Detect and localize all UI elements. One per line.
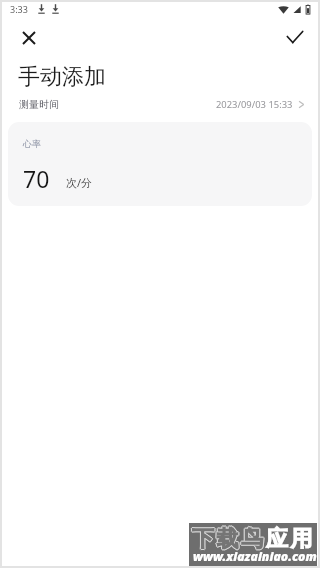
button[interactable]: 测量时间	[2, 91, 318, 117]
staticText: 手动添加	[18, 63, 106, 91]
staticText: 2023/09/03 15:33	[216, 98, 293, 111]
staticText: 测量时间	[19, 98, 59, 111]
button[interactable]: Confirm	[277, 18, 313, 54]
staticText: 下载鸟	[191, 525, 265, 553]
staticText: 次/分	[66, 175, 93, 190]
staticText: 下载鸟	[193, 525, 267, 553]
staticText: 应用	[266, 525, 316, 553]
button[interactable]: Close	[11, 18, 47, 54]
staticText: 3:33	[10, 3, 28, 15]
staticText: 下载鸟	[192, 524, 266, 552]
staticText: 70	[23, 163, 50, 194]
staticText: 心率	[23, 138, 41, 149]
staticText: 下载鸟	[192, 525, 266, 553]
staticText: 下载鸟	[192, 526, 266, 554]
button[interactable]: 心率	[8, 122, 312, 206]
staticText: www.xiazainiao.com	[193, 548, 320, 565]
